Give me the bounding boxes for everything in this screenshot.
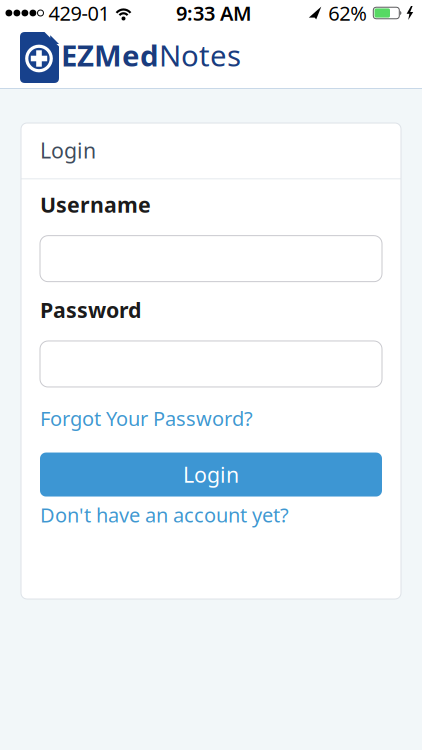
button[interactable]: Don't have an account yet? [40, 501, 289, 528]
staticText: Don't have an account yet? [40, 501, 289, 528]
staticText: Login [183, 460, 239, 489]
staticText: EZMedNotes [61, 35, 241, 74]
button[interactable]: Forgot Your Password? [40, 405, 253, 432]
button[interactable]: Login [40, 452, 382, 496]
staticText: 429-01 [48, 0, 109, 26]
button[interactable]: Password [40, 341, 382, 387]
staticText: Username [40, 190, 151, 219]
staticText: Forgot Your Password? [40, 405, 253, 432]
staticText: Password [40, 296, 141, 324]
staticText: 62% [328, 0, 367, 26]
staticText: 9:33 AM [176, 0, 252, 26]
staticText: Login [40, 136, 96, 164]
button[interactable]: Username [40, 236, 382, 282]
